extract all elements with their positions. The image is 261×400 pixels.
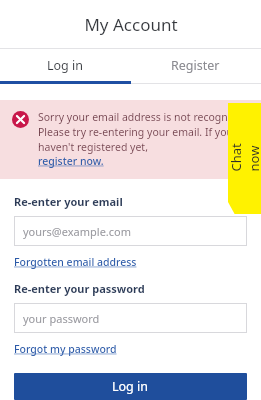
- staticText: Log in: [47, 57, 84, 74]
- button[interactable]: Forgot my password: [14, 342, 117, 356]
- staticText: Register: [171, 57, 220, 74]
- staticText: register now.: [38, 154, 104, 168]
- button[interactable]: your password: [14, 303, 247, 333]
- button[interactable]: yours@example.com: [14, 216, 247, 246]
- staticText: Forgotten email address: [14, 255, 137, 269]
- button[interactable]: Log in: [14, 373, 247, 400]
- button[interactable]: Chat now: [228, 103, 261, 214]
- staticText: Re-enter your password: [14, 281, 145, 296]
- staticText: Chat now: [226, 138, 261, 171]
- staticText: My Account: [84, 13, 178, 36]
- staticText: Log in: [112, 378, 149, 395]
- button[interactable]: Register: [130, 49, 261, 81]
- staticText: Sorry your email address is not recognis…: [38, 110, 251, 154]
- staticText: your password: [23, 311, 100, 326]
- button[interactable]: Log in: [0, 49, 130, 81]
- staticText: yours@example.com: [23, 224, 131, 239]
- staticText: Re-enter your email: [14, 194, 123, 209]
- button[interactable]: register now.: [38, 154, 104, 168]
- button[interactable]: Forgotten email address: [14, 255, 137, 269]
- staticText: Forgot my password: [14, 342, 117, 356]
